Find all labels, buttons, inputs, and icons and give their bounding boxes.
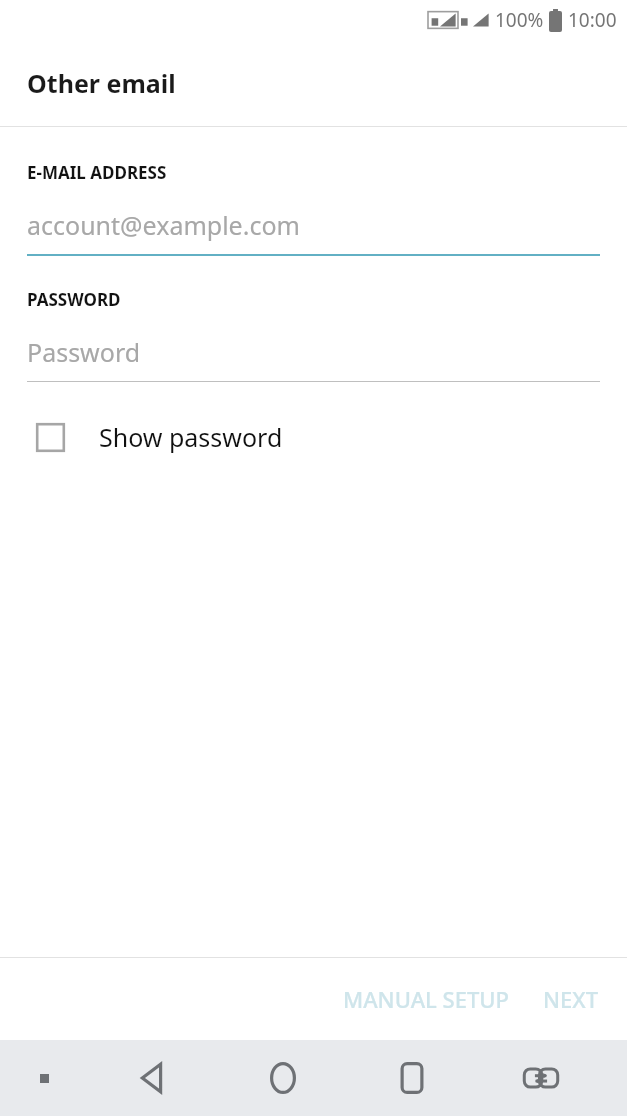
button[interactable]: NEXT xyxy=(529,972,613,1026)
button[interactable]: Show password xyxy=(0,412,627,462)
button[interactable]: MANUAL SETUP xyxy=(329,972,523,1026)
staticText: PASSWORD xyxy=(27,288,121,311)
staticText: 100% xyxy=(495,7,544,33)
staticText: NEXT xyxy=(543,984,599,1014)
button[interactable]: Hide navigation bar xyxy=(0,1040,88,1116)
staticText: MANUAL SETUP xyxy=(343,984,509,1014)
staticText: Show password xyxy=(99,420,283,454)
staticText: Other email xyxy=(27,66,176,100)
button[interactable]: Dual window xyxy=(476,1040,605,1116)
staticText: E-MAIL ADDRESS xyxy=(27,161,167,184)
staticText: account@example.com xyxy=(27,208,300,242)
staticText: Password xyxy=(27,335,141,369)
button[interactable]: Back xyxy=(88,1040,218,1116)
staticText: 10:00 xyxy=(568,7,617,33)
button[interactable]: Recent apps xyxy=(347,1040,476,1116)
button[interactable]: account@example.com xyxy=(27,208,600,256)
button[interactable]: Home xyxy=(218,1040,347,1116)
button[interactable]: Password xyxy=(27,335,600,382)
